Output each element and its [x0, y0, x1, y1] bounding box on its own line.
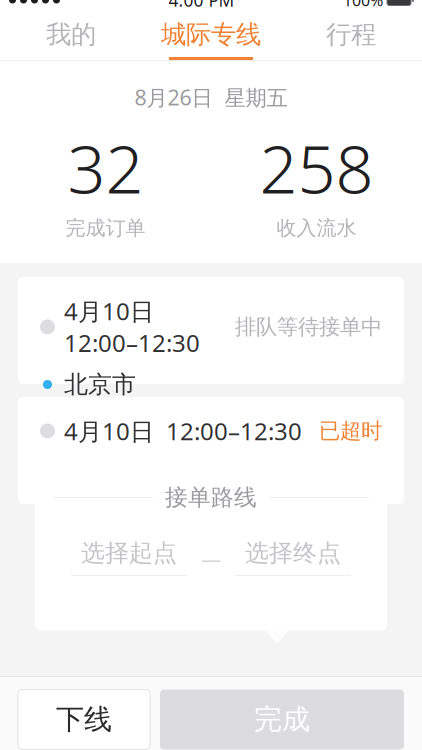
staticText: 选择终点 [245, 538, 341, 568]
button[interactable]: 行程 [281, 12, 421, 60]
button[interactable]: 选择终点 [231, 538, 355, 580]
staticText: 收入流水 [276, 216, 356, 240]
staticText: 选择起点 [81, 538, 177, 568]
staticText: 32 [67, 123, 143, 212]
staticText: 4:00 PM [168, 0, 234, 11]
staticText: 258 [259, 123, 373, 212]
button[interactable]: 选择起点 [67, 538, 191, 580]
button[interactable]: 完成 [160, 689, 404, 749]
button[interactable]: 🕐 [18, 277, 404, 384]
staticText: 排队等待接单中 [235, 314, 382, 340]
staticText: 行程 [326, 19, 376, 50]
staticText: 已超时 [319, 418, 382, 444]
staticText: — [201, 546, 221, 573]
button[interactable]: 下线 [18, 689, 150, 749]
staticText: 完成订单 [65, 216, 145, 240]
staticText: 接单路线 [165, 483, 257, 511]
staticText: 城际专线 [161, 19, 261, 50]
staticText: 我的 [46, 19, 96, 50]
staticText: 石家庄市 [64, 408, 160, 438]
button[interactable]: 城际专线 [141, 12, 281, 60]
button[interactable]: 🕐 [18, 397, 404, 504]
staticText: 完成 [254, 702, 310, 737]
staticText: 4月10日 12:00–12:30 [64, 295, 200, 359]
staticText: 8月26日 星期五 [134, 83, 287, 111]
staticText: 4月10日 12:00–12:30 [64, 415, 302, 447]
staticText: 北京市 [64, 370, 136, 399]
staticText: 下线 [56, 702, 112, 737]
button[interactable]: 我的 [1, 12, 141, 60]
staticText: 100% [343, 0, 383, 11]
